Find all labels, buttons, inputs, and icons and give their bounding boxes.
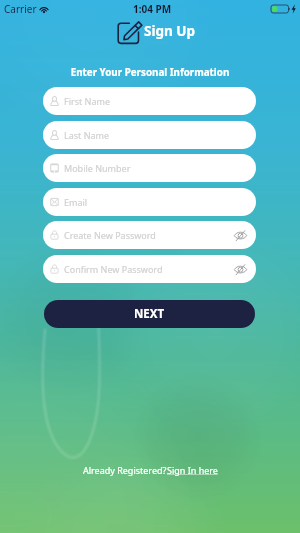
button[interactable]: Confirm New Password <box>43 255 256 283</box>
staticText: Confirm New Password <box>64 263 163 275</box>
staticText: First Name <box>64 95 110 107</box>
staticText: Enter Your Personal Information <box>0 66 300 79</box>
staticText: Already Registered? <box>83 464 167 476</box>
button[interactable]: Create New Password <box>43 221 256 249</box>
button[interactable]: NEXT <box>44 300 255 328</box>
staticText: 1:04 PM <box>133 2 172 16</box>
staticText: Sign Up <box>144 22 196 40</box>
button[interactable]: Last Name <box>43 121 256 149</box>
button[interactable]: Sign In here <box>167 464 218 476</box>
staticText: Sign In here <box>167 464 218 476</box>
staticText: Carrier <box>4 2 37 16</box>
button[interactable]: First Name <box>43 87 256 115</box>
other: Show password <box>234 265 247 274</box>
staticText: Last Name <box>64 129 110 141</box>
button[interactable]: Mobile Number <box>43 154 256 182</box>
staticText: NEXT <box>134 306 165 322</box>
staticText: Create New Password <box>64 229 156 241</box>
staticText: Mobile Number <box>64 162 131 174</box>
staticText: Email <box>64 196 88 208</box>
other: Show password <box>234 231 247 240</box>
other: Sign Up <box>113 22 139 44</box>
button[interactable]: Email <box>43 188 256 216</box>
